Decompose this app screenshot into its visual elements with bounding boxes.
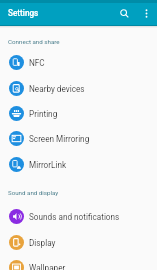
staticText: Sounds and notifications — [29, 212, 120, 222]
button[interactable]: MirrorLink — [0, 152, 157, 177]
staticText: Display — [29, 238, 56, 248]
staticText: Wallpaper — [29, 263, 66, 270]
button[interactable]: Screen Mirroring — [0, 126, 157, 151]
button[interactable]: Wallpaper — [0, 255, 157, 270]
staticText: Printing — [29, 109, 58, 119]
staticText: Settings — [8, 8, 39, 18]
staticText: Sound and display — [8, 189, 59, 196]
staticText: Screen Mirroring — [29, 134, 90, 144]
staticText: Nearby devices — [29, 84, 85, 94]
button[interactable]: Nearby devices — [0, 76, 157, 101]
staticText: NFC — [29, 58, 45, 68]
button[interactable]: Search — [116, 5, 132, 21]
button[interactable]: NFC — [0, 50, 157, 75]
staticText: MirrorLink — [29, 160, 67, 170]
button[interactable]: Display — [0, 230, 157, 255]
staticText: Connect and share — [8, 38, 60, 45]
button[interactable]: Sounds and notifications — [0, 204, 157, 229]
button[interactable]: Printing — [0, 101, 157, 126]
button[interactable]: More options — [138, 5, 154, 21]
